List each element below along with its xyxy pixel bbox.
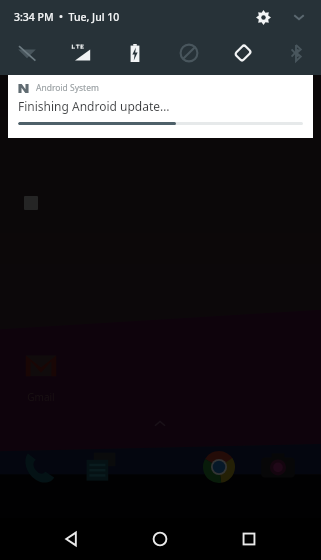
button[interactable]: Camera [258,447,298,487]
button[interactable]: Back [50,518,94,560]
button[interactable]: Expand [285,3,313,31]
staticText: Gmail [27,390,55,404]
button[interactable]: Mobile data LTE [54,36,108,70]
button[interactable]: Auto rotate [216,36,270,70]
button[interactable]: Recents [227,518,271,560]
button[interactable]: Phone [19,447,59,487]
staticText: Android System [36,82,99,94]
button[interactable]: Wi-Fi [0,36,54,70]
button[interactable]: Gmail [17,345,65,404]
button[interactable]: Do not disturb [162,36,216,70]
button[interactable]: Chrome [199,447,239,487]
button[interactable]: Bluetooth [270,36,321,70]
button[interactable]: Home [138,518,182,560]
button[interactable]: Settings [249,3,277,31]
button[interactable]: Android System [8,75,313,138]
button[interactable]: Messages [81,447,121,487]
button[interactable]: Battery [108,36,162,70]
staticText: Finishing Android update… [18,98,170,114]
staticText: 3:34 PM • Tue, Jul 10 [14,10,120,24]
